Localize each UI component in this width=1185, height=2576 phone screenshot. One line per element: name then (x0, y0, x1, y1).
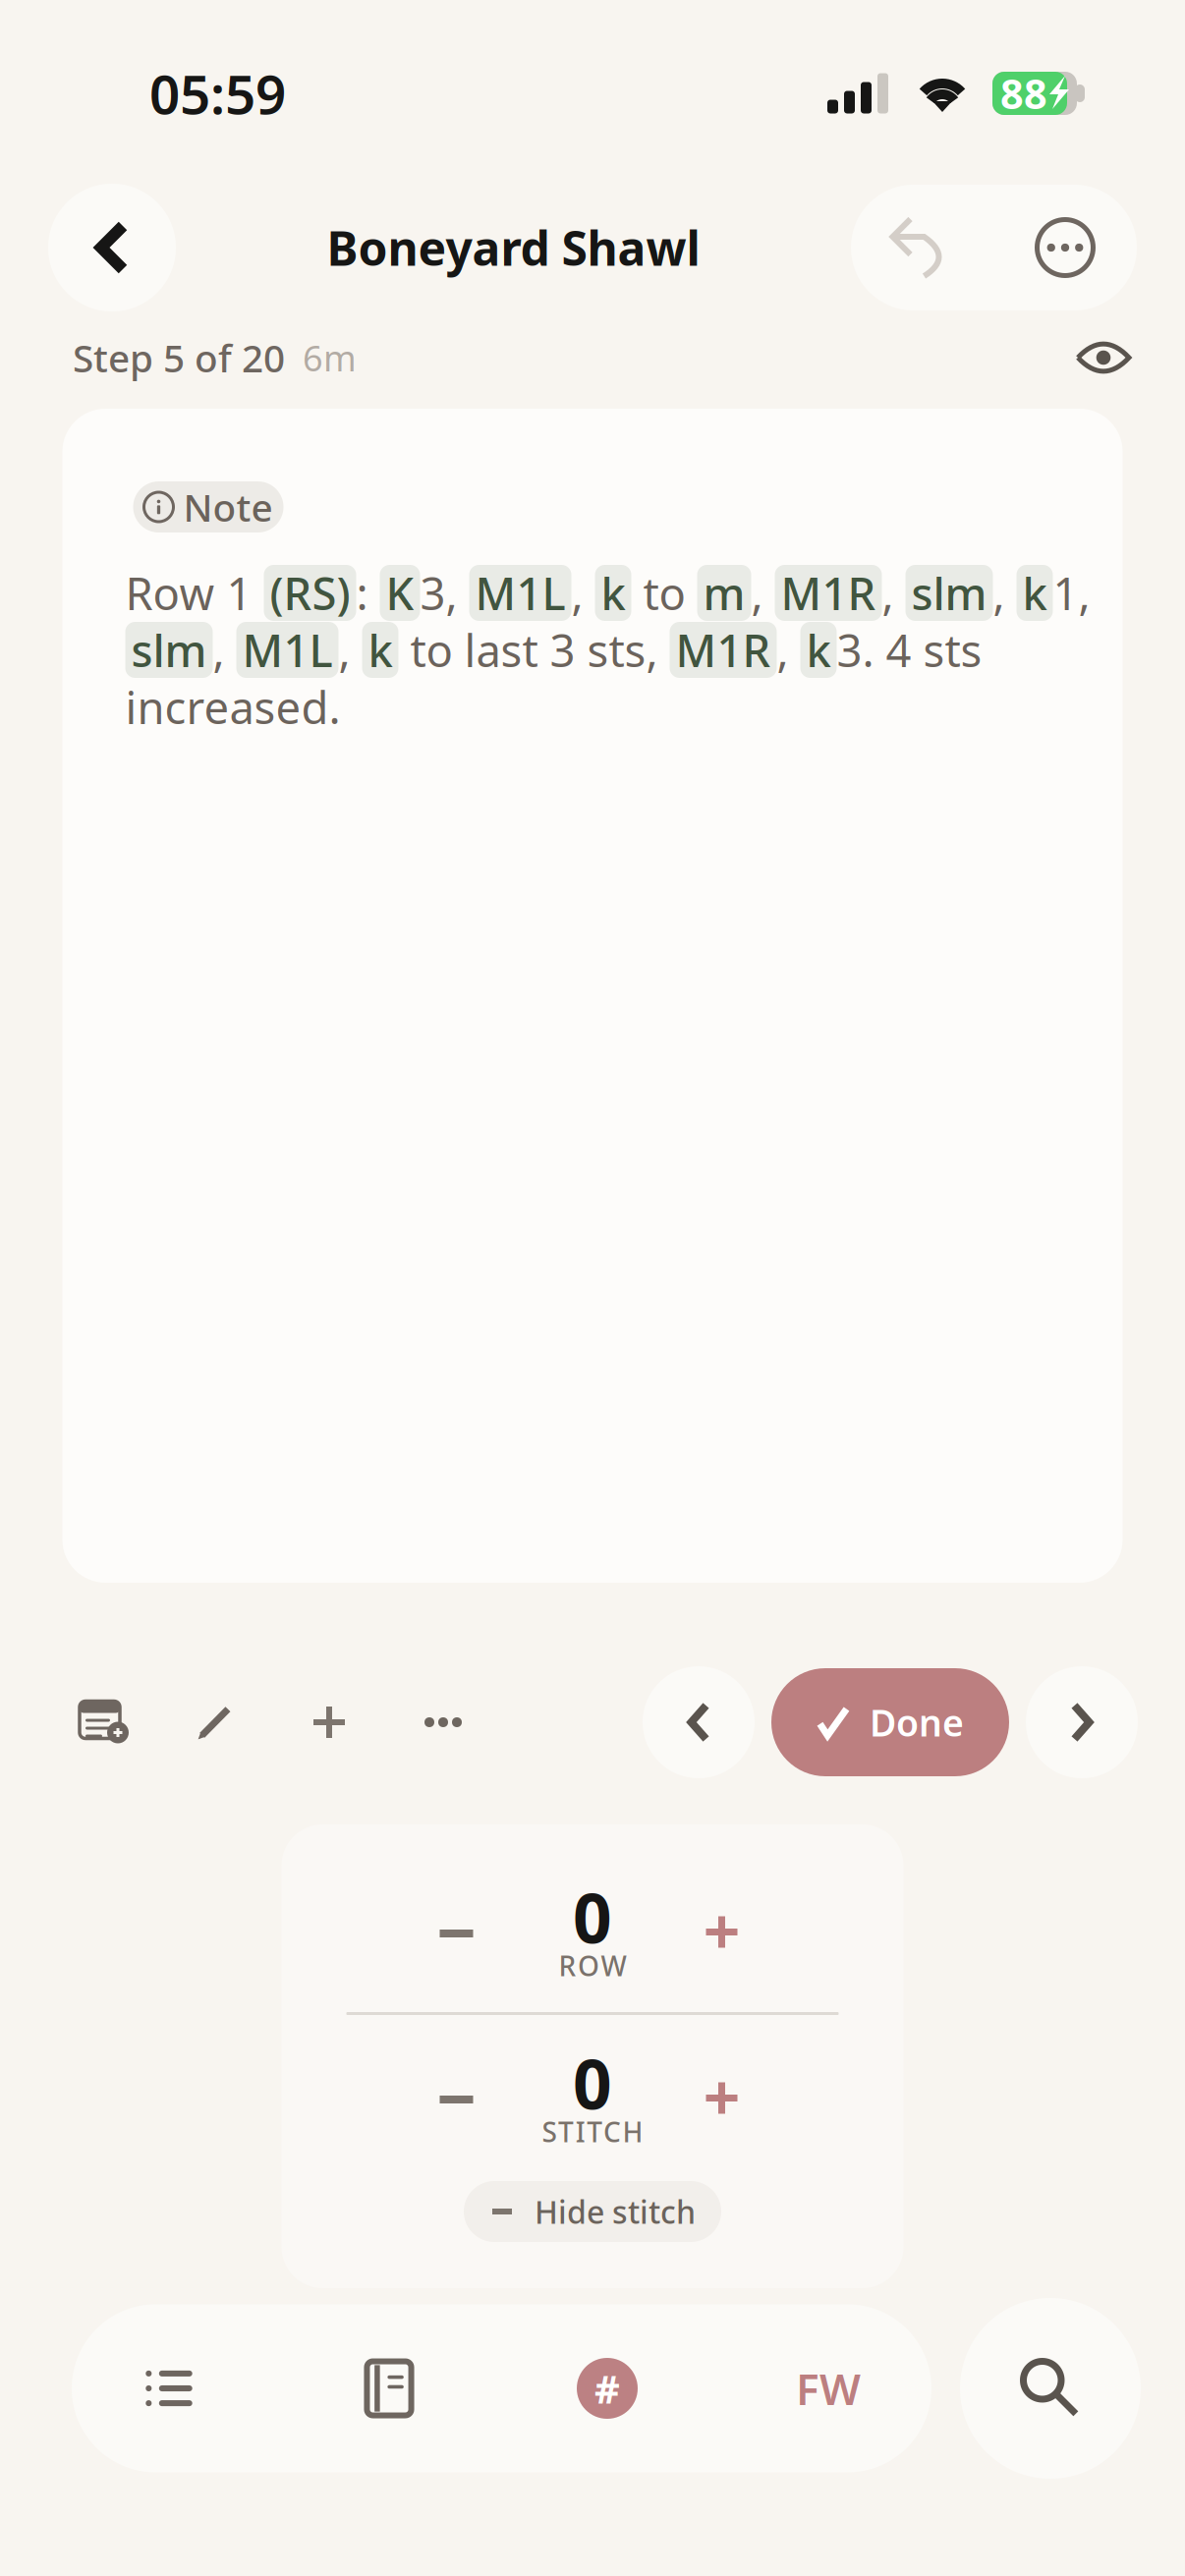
staticText: 88 (1000, 66, 1047, 120)
staticText: Boneyard Shawl (327, 216, 700, 279)
staticText: , (213, 620, 236, 679)
staticText: M1R (676, 620, 771, 679)
button[interactable]: More options (386, 1665, 500, 1779)
staticText: K (386, 563, 414, 622)
staticText: 3. 4 sts (837, 620, 982, 679)
staticText: to last 3 sts, (398, 620, 670, 679)
staticText: M1L (475, 563, 565, 622)
staticText: ROW (559, 1947, 626, 1984)
staticText: increased. (125, 677, 340, 736)
staticText: 6m (285, 334, 357, 381)
button[interactable]: More (993, 185, 1137, 310)
staticText: , (993, 563, 1016, 622)
staticText: to (631, 563, 697, 622)
staticText: 3, (420, 563, 469, 622)
staticText: k (368, 620, 393, 679)
staticText: k (601, 563, 625, 622)
staticText: , (751, 563, 775, 622)
staticText: 1, (1053, 563, 1090, 622)
staticText: k (806, 620, 831, 679)
button[interactable]: Add note (50, 1665, 158, 1779)
staticText: k (1022, 563, 1047, 622)
staticText: 05:59 (149, 58, 286, 129)
button[interactable]: Back (48, 184, 176, 311)
staticText: # (594, 2362, 620, 2414)
staticText: : (356, 563, 380, 622)
button[interactable]: Decrease ROW (394, 1869, 519, 1959)
staticText: M1L (242, 620, 333, 679)
staticText: 0 (573, 2038, 612, 2128)
staticText: M1R (781, 563, 876, 622)
staticText: m (703, 563, 745, 622)
staticText: Hide stitch (535, 2191, 696, 2232)
staticText: , (571, 563, 595, 622)
button[interactable]: Next step (1026, 1666, 1138, 1778)
staticText: , (777, 620, 800, 679)
staticText: , (339, 620, 362, 679)
staticText: FW (796, 2360, 861, 2417)
button[interactable]: Increase STITCH (659, 2035, 785, 2125)
staticText: Row 1 (125, 563, 264, 622)
button[interactable]: Edit (158, 1665, 272, 1779)
staticText: Note (183, 482, 273, 532)
staticText: slm (911, 563, 987, 622)
button[interactable]: Done (771, 1668, 1009, 1776)
button[interactable]: Decrease STITCH (394, 2035, 519, 2125)
button[interactable]: Pattern (320, 2304, 458, 2472)
button[interactable]: Hide stitch (464, 2181, 721, 2242)
staticText: 0 (573, 1872, 612, 1962)
button[interactable]: Steps list (100, 2304, 238, 2472)
button[interactable]: Search (960, 2298, 1141, 2479)
staticText: (RS) (270, 563, 350, 622)
button[interactable]: Add (272, 1665, 386, 1779)
button[interactable]: Preview (1073, 333, 1134, 382)
staticText: STITCH (542, 2113, 643, 2150)
staticText: Done (870, 1698, 964, 1747)
button[interactable]: Previous step (643, 1666, 755, 1778)
staticText: , (882, 563, 905, 622)
button[interactable]: FW (760, 2304, 897, 2472)
staticText: Step 5 of 20 (73, 332, 285, 383)
staticText: slm (131, 620, 207, 679)
button[interactable]: Increase ROW (659, 1869, 785, 1959)
button[interactable]: Counters (538, 2304, 676, 2472)
button[interactable]: Undo (851, 185, 993, 310)
